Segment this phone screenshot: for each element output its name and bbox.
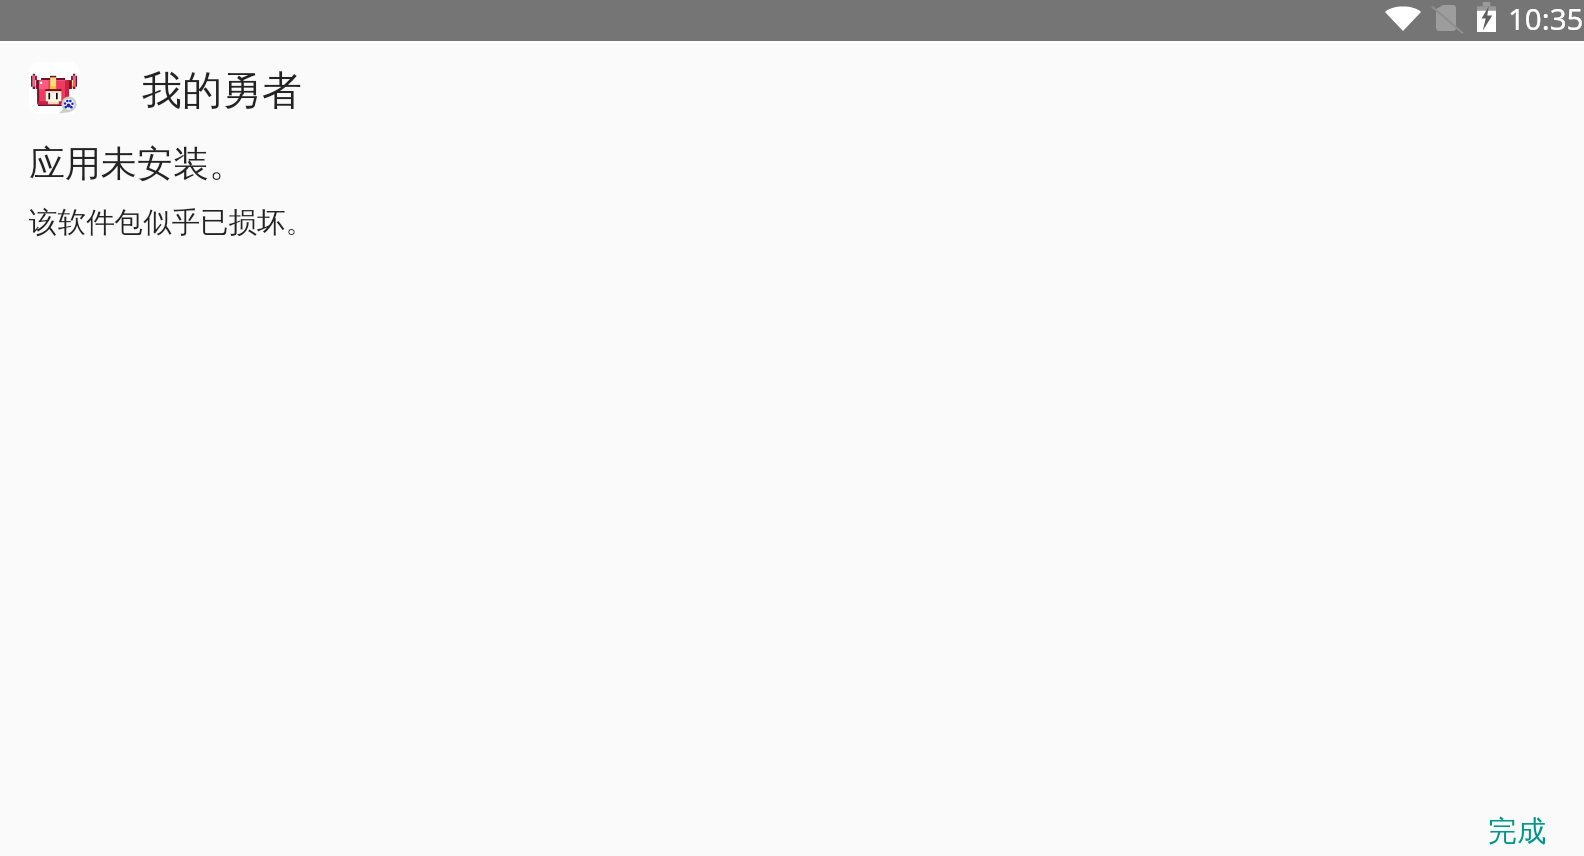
staticText: 10:35 [1508, 0, 1584, 38]
other: No SIM card [1436, 5, 1456, 31]
staticText: 该软件包似乎已损坏。 [29, 205, 314, 241]
staticText: 应用未安装。 [29, 141, 245, 186]
button[interactable]: 完成 [1458, 800, 1576, 856]
staticText: 我的勇者 [142, 65, 302, 115]
staticText: 完成 [1488, 813, 1546, 850]
other: Battery charging [1477, 2, 1496, 32]
other: Wi-Fi connected [1385, 4, 1421, 31]
other: 我的勇者 app icon [29, 62, 79, 114]
